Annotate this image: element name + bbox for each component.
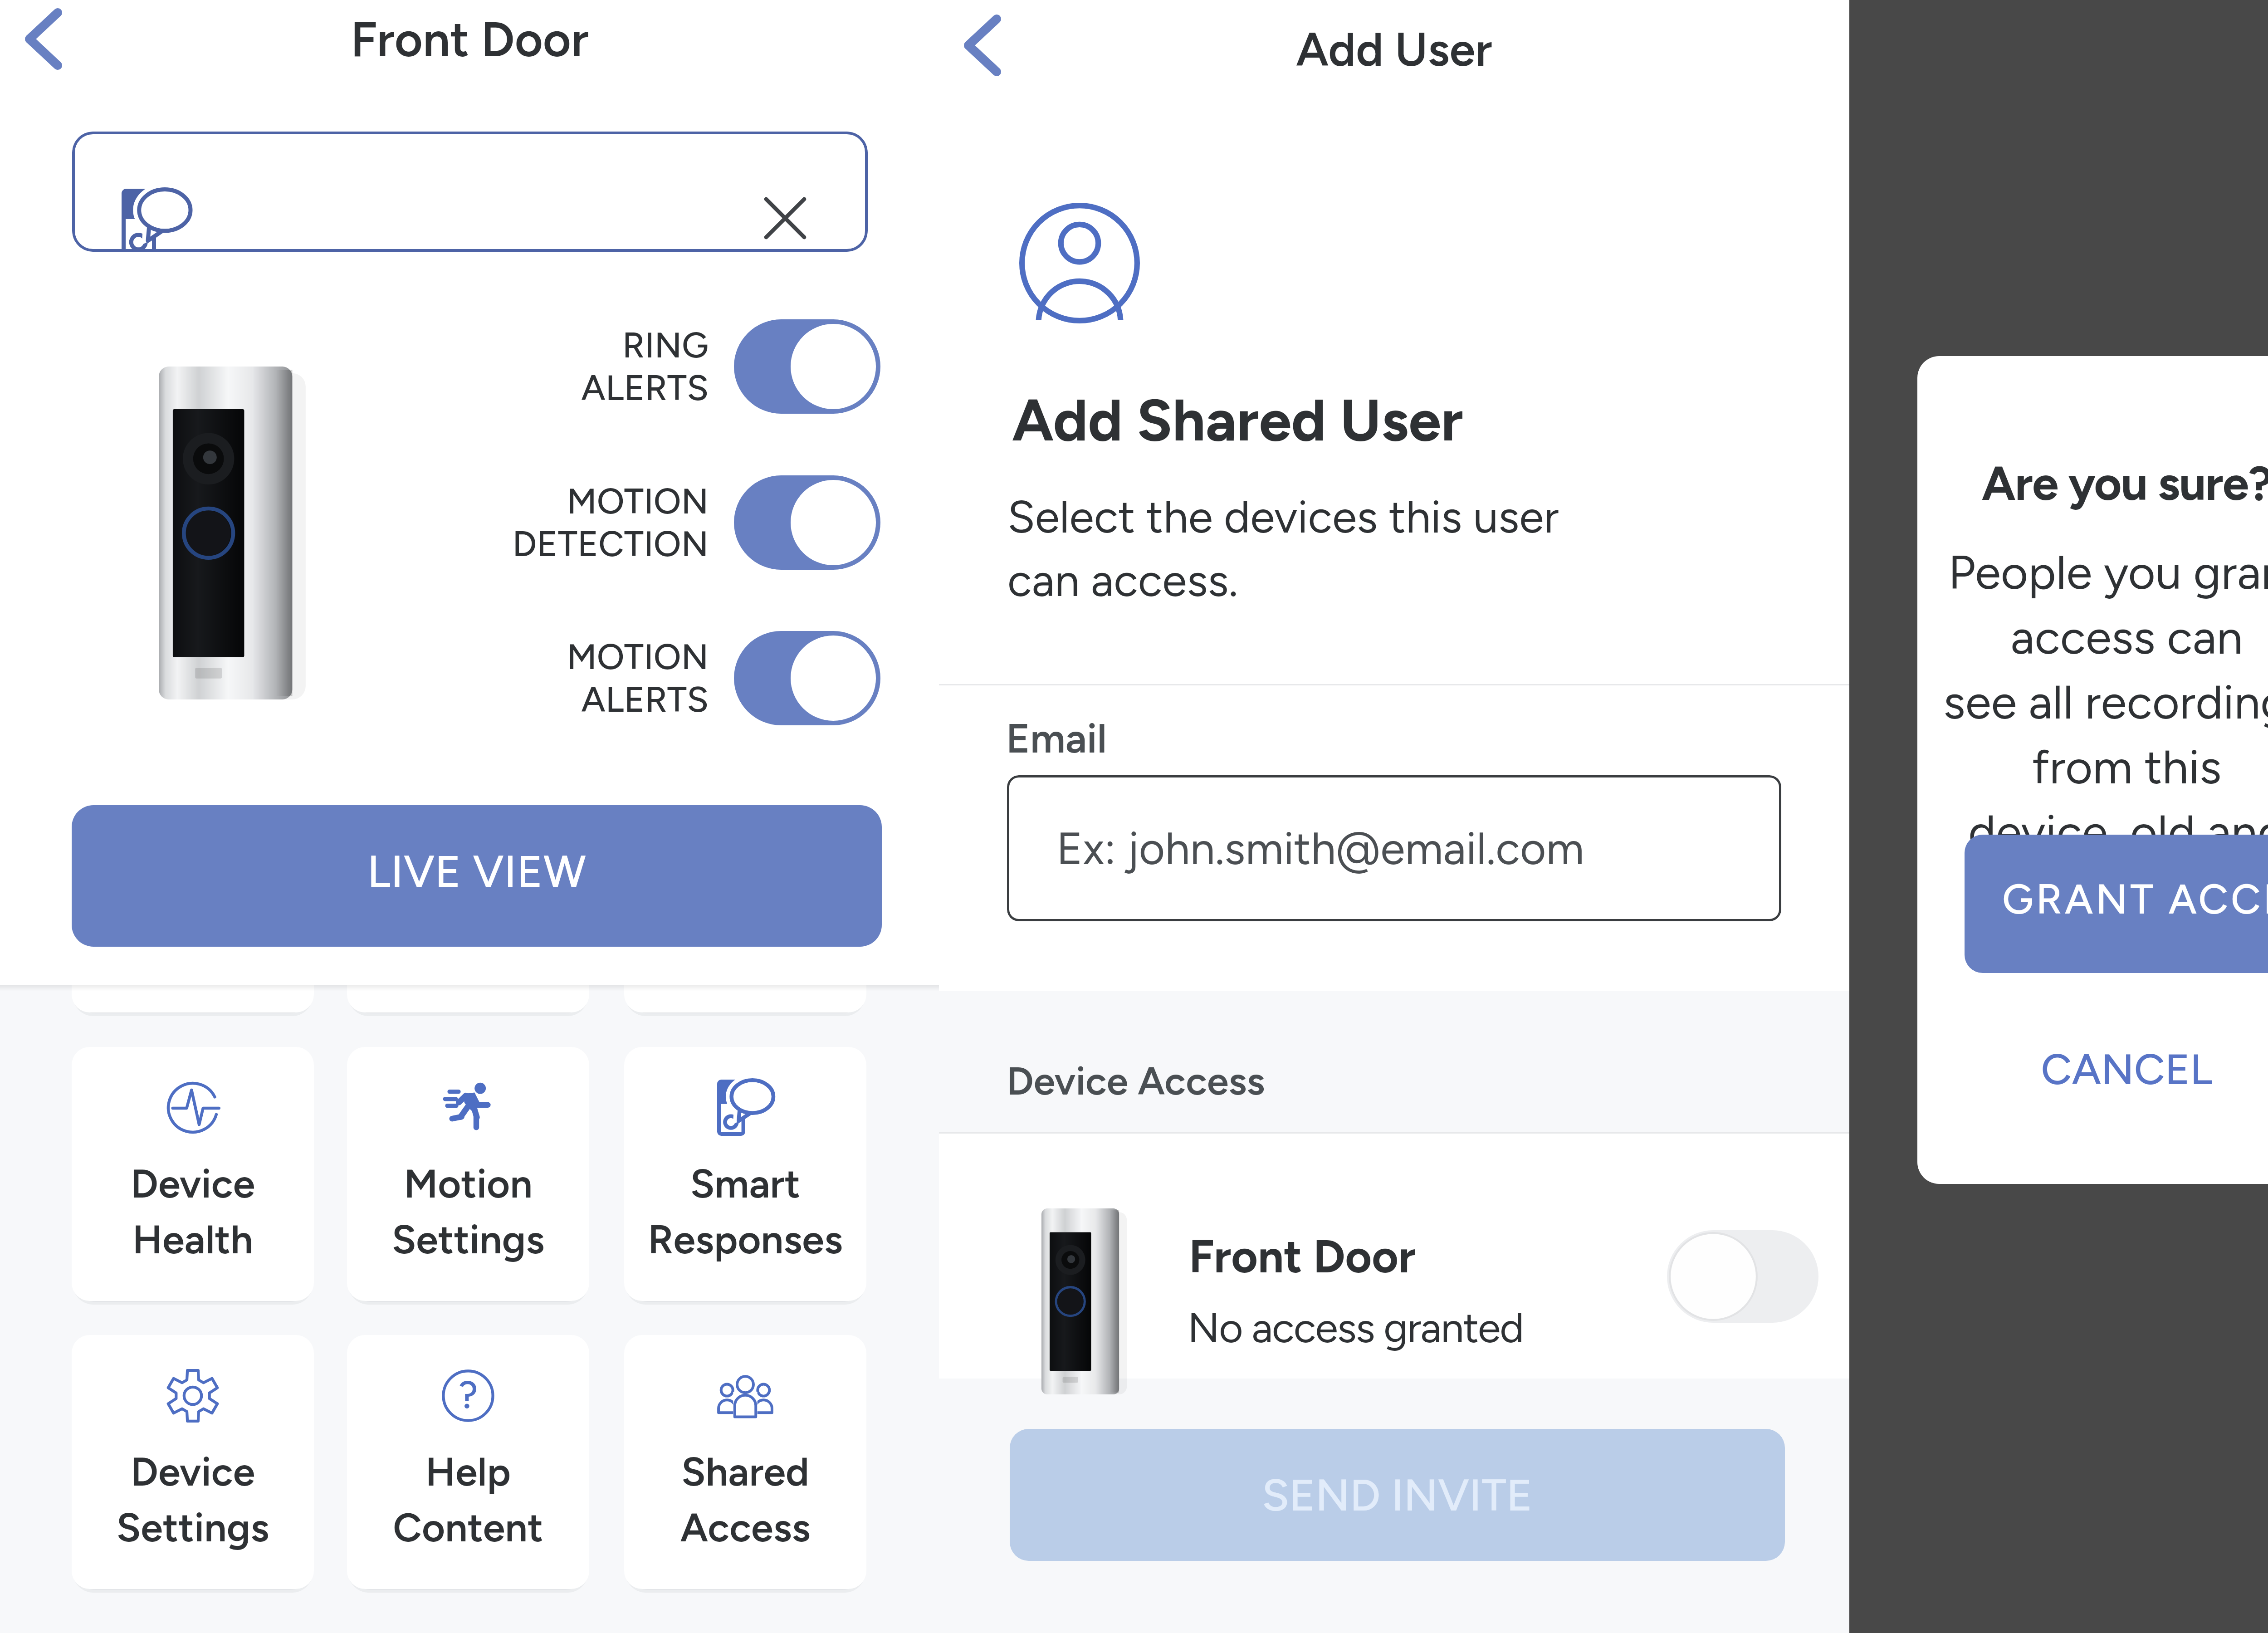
staticText: Shared Access xyxy=(624,1447,866,1551)
button[interactable]: Motion Settings xyxy=(347,1047,589,1301)
staticText: Front Door xyxy=(1189,1229,1416,1284)
button[interactable]: Back xyxy=(16,0,71,78)
staticText: SEND INVITE xyxy=(1262,1468,1533,1522)
button[interactable]: Shared Access xyxy=(624,1335,866,1589)
button[interactable]: MOTION ALERTS toggle, on xyxy=(734,631,880,725)
staticText: Ex: john.smith@email.com xyxy=(1056,821,1584,875)
button[interactable] xyxy=(939,1134,1849,1379)
button[interactable]: Device Settings xyxy=(72,1335,314,1589)
staticText: Smart Responses xyxy=(624,871,866,975)
button[interactable]: Clear xyxy=(766,199,804,237)
staticText: ALERTS xyxy=(581,367,709,409)
staticText: LIVE VIEW xyxy=(367,845,587,898)
staticText: MOTION xyxy=(567,480,709,523)
staticText: Add User xyxy=(1296,21,1492,78)
button[interactable]: Clear xyxy=(72,132,868,252)
button[interactable]: Ex: john.smith@email.com xyxy=(1007,775,1781,921)
staticText: Add Shared User xyxy=(1012,385,1463,455)
button[interactable]: SEND INVITE xyxy=(1010,1429,1785,1561)
staticText: Are you sure? xyxy=(1917,455,2268,512)
button[interactable]: LIVE VIEW xyxy=(72,805,882,947)
button[interactable]: Smart Responses xyxy=(624,1047,866,1301)
staticText: No access granted xyxy=(1188,1303,1524,1353)
staticText: MOTION xyxy=(567,636,709,678)
staticText: Select the devices this user can access. xyxy=(1007,490,1559,607)
button[interactable]: Device Health xyxy=(72,758,314,1012)
button[interactable]: Front Door access toggle, off xyxy=(1667,1230,1818,1323)
staticText: ? xyxy=(459,1372,478,1418)
button[interactable]: Device Health xyxy=(72,1047,314,1301)
staticText: Device Access xyxy=(1007,1057,1265,1104)
staticText: Front Door xyxy=(351,10,589,68)
staticText: Motion Settings xyxy=(347,871,589,975)
staticText: RING xyxy=(622,324,709,367)
staticText: Email xyxy=(1006,714,1107,763)
staticText: Motion Settings xyxy=(347,1159,589,1263)
staticText: ALERTS xyxy=(581,678,709,721)
button[interactable]: CANCEL xyxy=(1917,1033,2268,1106)
button[interactable]: Back xyxy=(955,6,1010,84)
staticText: GRANT ACCESS xyxy=(2002,875,2268,924)
button[interactable]: Smart Responses xyxy=(624,758,866,1012)
button[interactable]: GRANT ACCESS xyxy=(1965,835,2268,973)
staticText: Device Health xyxy=(72,871,314,975)
staticText: People you grant access can see all reco… xyxy=(1917,544,2268,925)
staticText: Smart Responses xyxy=(624,1159,866,1263)
button[interactable]: Motion Settings xyxy=(347,758,589,1012)
button[interactable]: ? xyxy=(347,1335,589,1589)
staticText: Help Content xyxy=(347,1447,589,1551)
button[interactable]: MOTION DETECTION toggle, on xyxy=(734,475,880,570)
staticText: DETECTION xyxy=(512,523,709,565)
staticText: Device Health xyxy=(72,1159,314,1263)
staticText: Device Settings xyxy=(72,1447,314,1551)
button[interactable]: RING ALERTS toggle, on xyxy=(734,319,880,414)
